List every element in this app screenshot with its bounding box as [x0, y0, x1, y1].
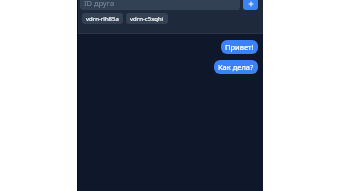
staticText: vdrn-rlh85a: [86, 15, 119, 23]
button[interactable]: Как дела?: [214, 60, 258, 74]
staticText: vdrn-c5xqhi: [130, 15, 164, 23]
staticText: Как дела?: [218, 62, 254, 72]
button[interactable]: vdrn-c5xqhi: [126, 13, 168, 24]
staticText: Привет!: [225, 42, 254, 52]
button[interactable]: Привет!: [221, 40, 258, 54]
button[interactable]: Add friend: [243, 0, 258, 10]
button[interactable]: ID друга: [80, 0, 240, 10]
staticText: ID друга: [84, 0, 115, 8]
button[interactable]: vdrn-rlh85a: [82, 13, 123, 24]
